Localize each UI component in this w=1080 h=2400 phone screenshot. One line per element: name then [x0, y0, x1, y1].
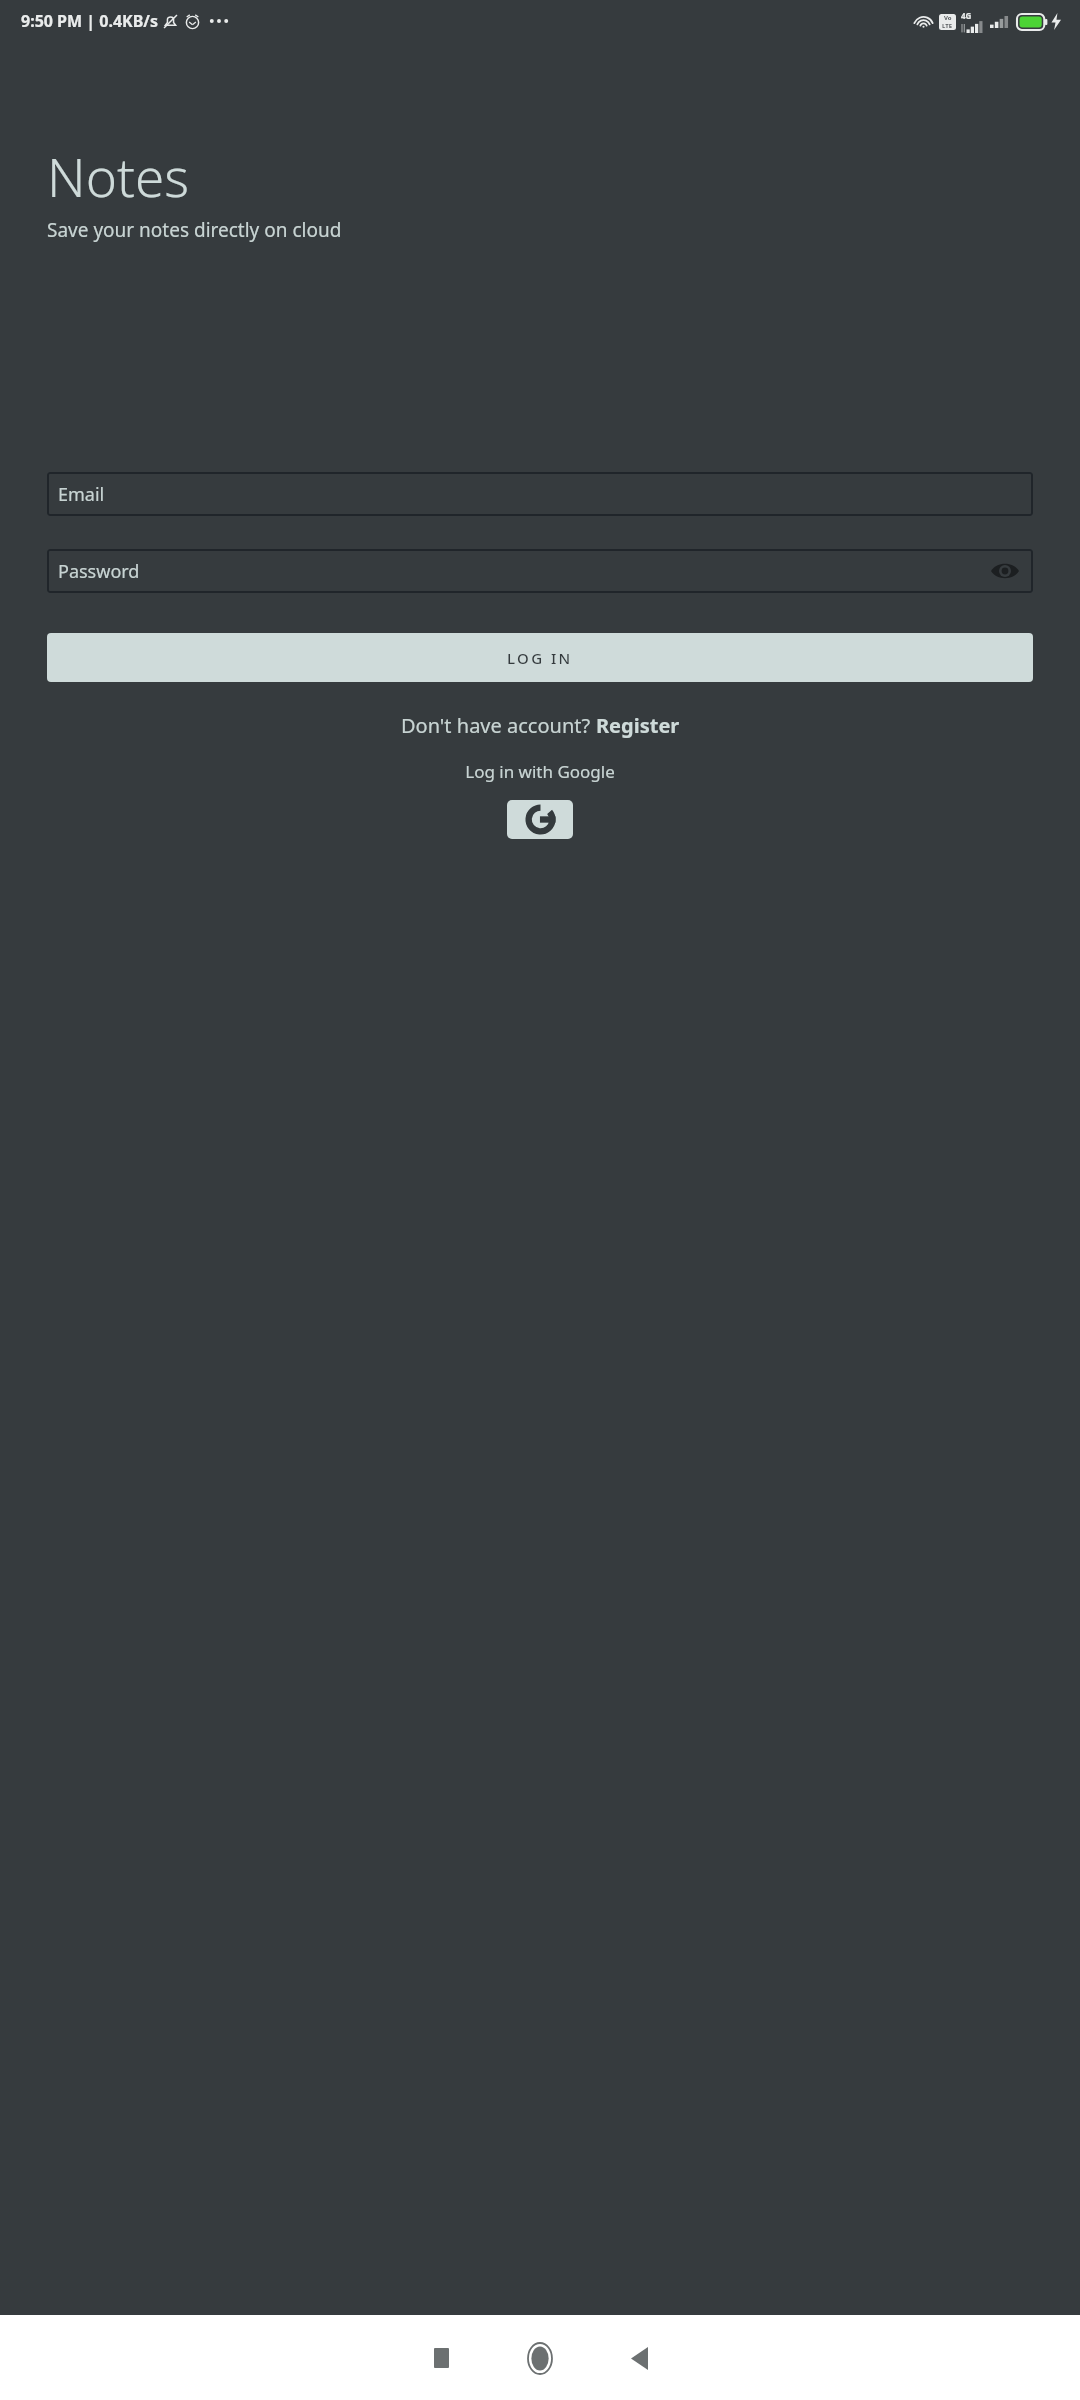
staticText: 9:50 PM | 0.4KB/s [21, 10, 159, 32]
button[interactable]: Log in with Google [507, 800, 573, 839]
button[interactable]: Don't have account? [0, 712, 1080, 739]
button[interactable]: Show password [990, 556, 1020, 586]
button[interactable]: LOG IN [47, 633, 1033, 682]
button[interactable]: Back [609, 2328, 669, 2388]
staticText: LOG IN [507, 648, 573, 668]
staticText: Don't have account? [401, 712, 596, 739]
button[interactable]: Recents [411, 2328, 471, 2388]
staticText: Log in with Google [0, 760, 1080, 783]
button[interactable]: Password [47, 549, 1033, 593]
button[interactable]: Home [510, 2328, 570, 2388]
staticText: Vo [944, 14, 952, 22]
staticText: Email [58, 482, 105, 507]
staticText: Register [596, 712, 680, 739]
staticText: Notes [47, 140, 189, 212]
staticText: Save your notes directly on cloud [47, 217, 342, 243]
staticText: Password [58, 559, 140, 584]
button[interactable]: Email [47, 472, 1033, 516]
staticText: 4G [961, 10, 972, 21]
staticText: LTE [942, 22, 953, 30]
